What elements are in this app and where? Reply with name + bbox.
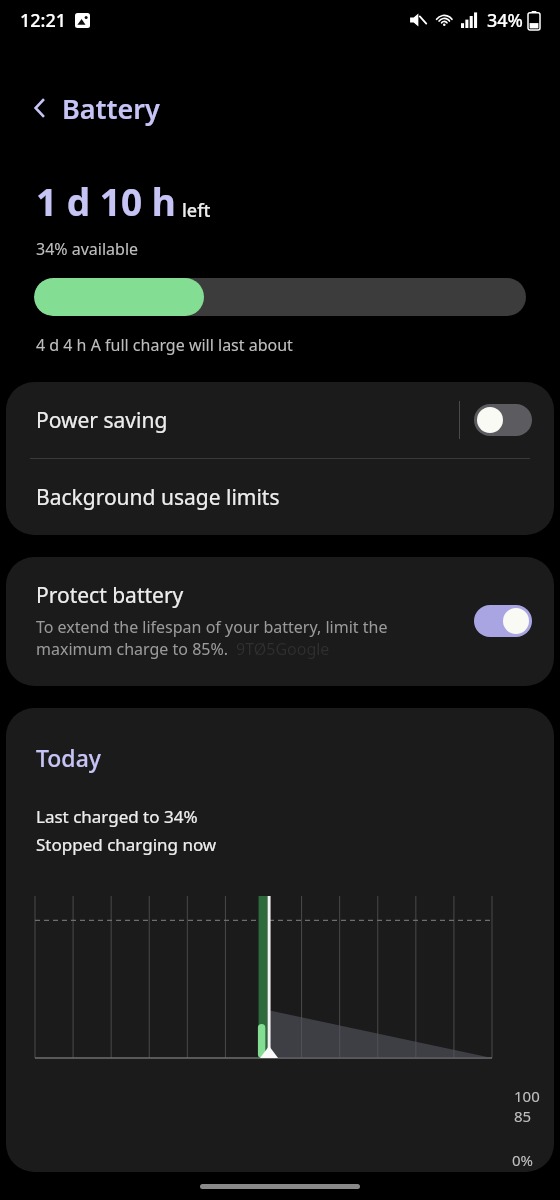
staticText: To extend the lifespan of your battery, … xyxy=(36,616,388,638)
staticText: 34% available xyxy=(36,238,139,260)
staticText: 100 xyxy=(514,1086,540,1106)
staticText: 4 d 4 h A full charge will last about xyxy=(36,334,293,356)
staticText: 1 d 10 h xyxy=(36,176,176,226)
staticText: left xyxy=(182,198,211,223)
button[interactable]: Protect battery xyxy=(6,557,554,686)
staticText: Power saving xyxy=(36,406,459,435)
staticText: Background usage limits xyxy=(36,483,280,512)
button[interactable]: Power saving xyxy=(6,382,554,458)
staticText: Last charged to 34% xyxy=(36,805,198,828)
staticText: 0% xyxy=(512,1150,534,1170)
staticText: Stopped charging now xyxy=(36,833,217,856)
staticText: 9TØ5Google xyxy=(236,638,330,660)
button[interactable]: Background usage limits xyxy=(6,459,554,535)
staticText: 85 xyxy=(514,1106,532,1126)
staticText: maximum charge to 85%. xyxy=(36,638,229,660)
staticText: Battery xyxy=(62,90,160,127)
button[interactable]: Toggle off xyxy=(474,404,532,436)
button[interactable]: Toggle on xyxy=(474,605,532,637)
staticText: Today xyxy=(36,742,101,773)
staticText: Protect battery xyxy=(36,581,184,610)
staticText: 12:21 xyxy=(20,8,67,33)
staticText: 34% xyxy=(487,8,523,33)
button[interactable]: Back xyxy=(18,86,62,130)
